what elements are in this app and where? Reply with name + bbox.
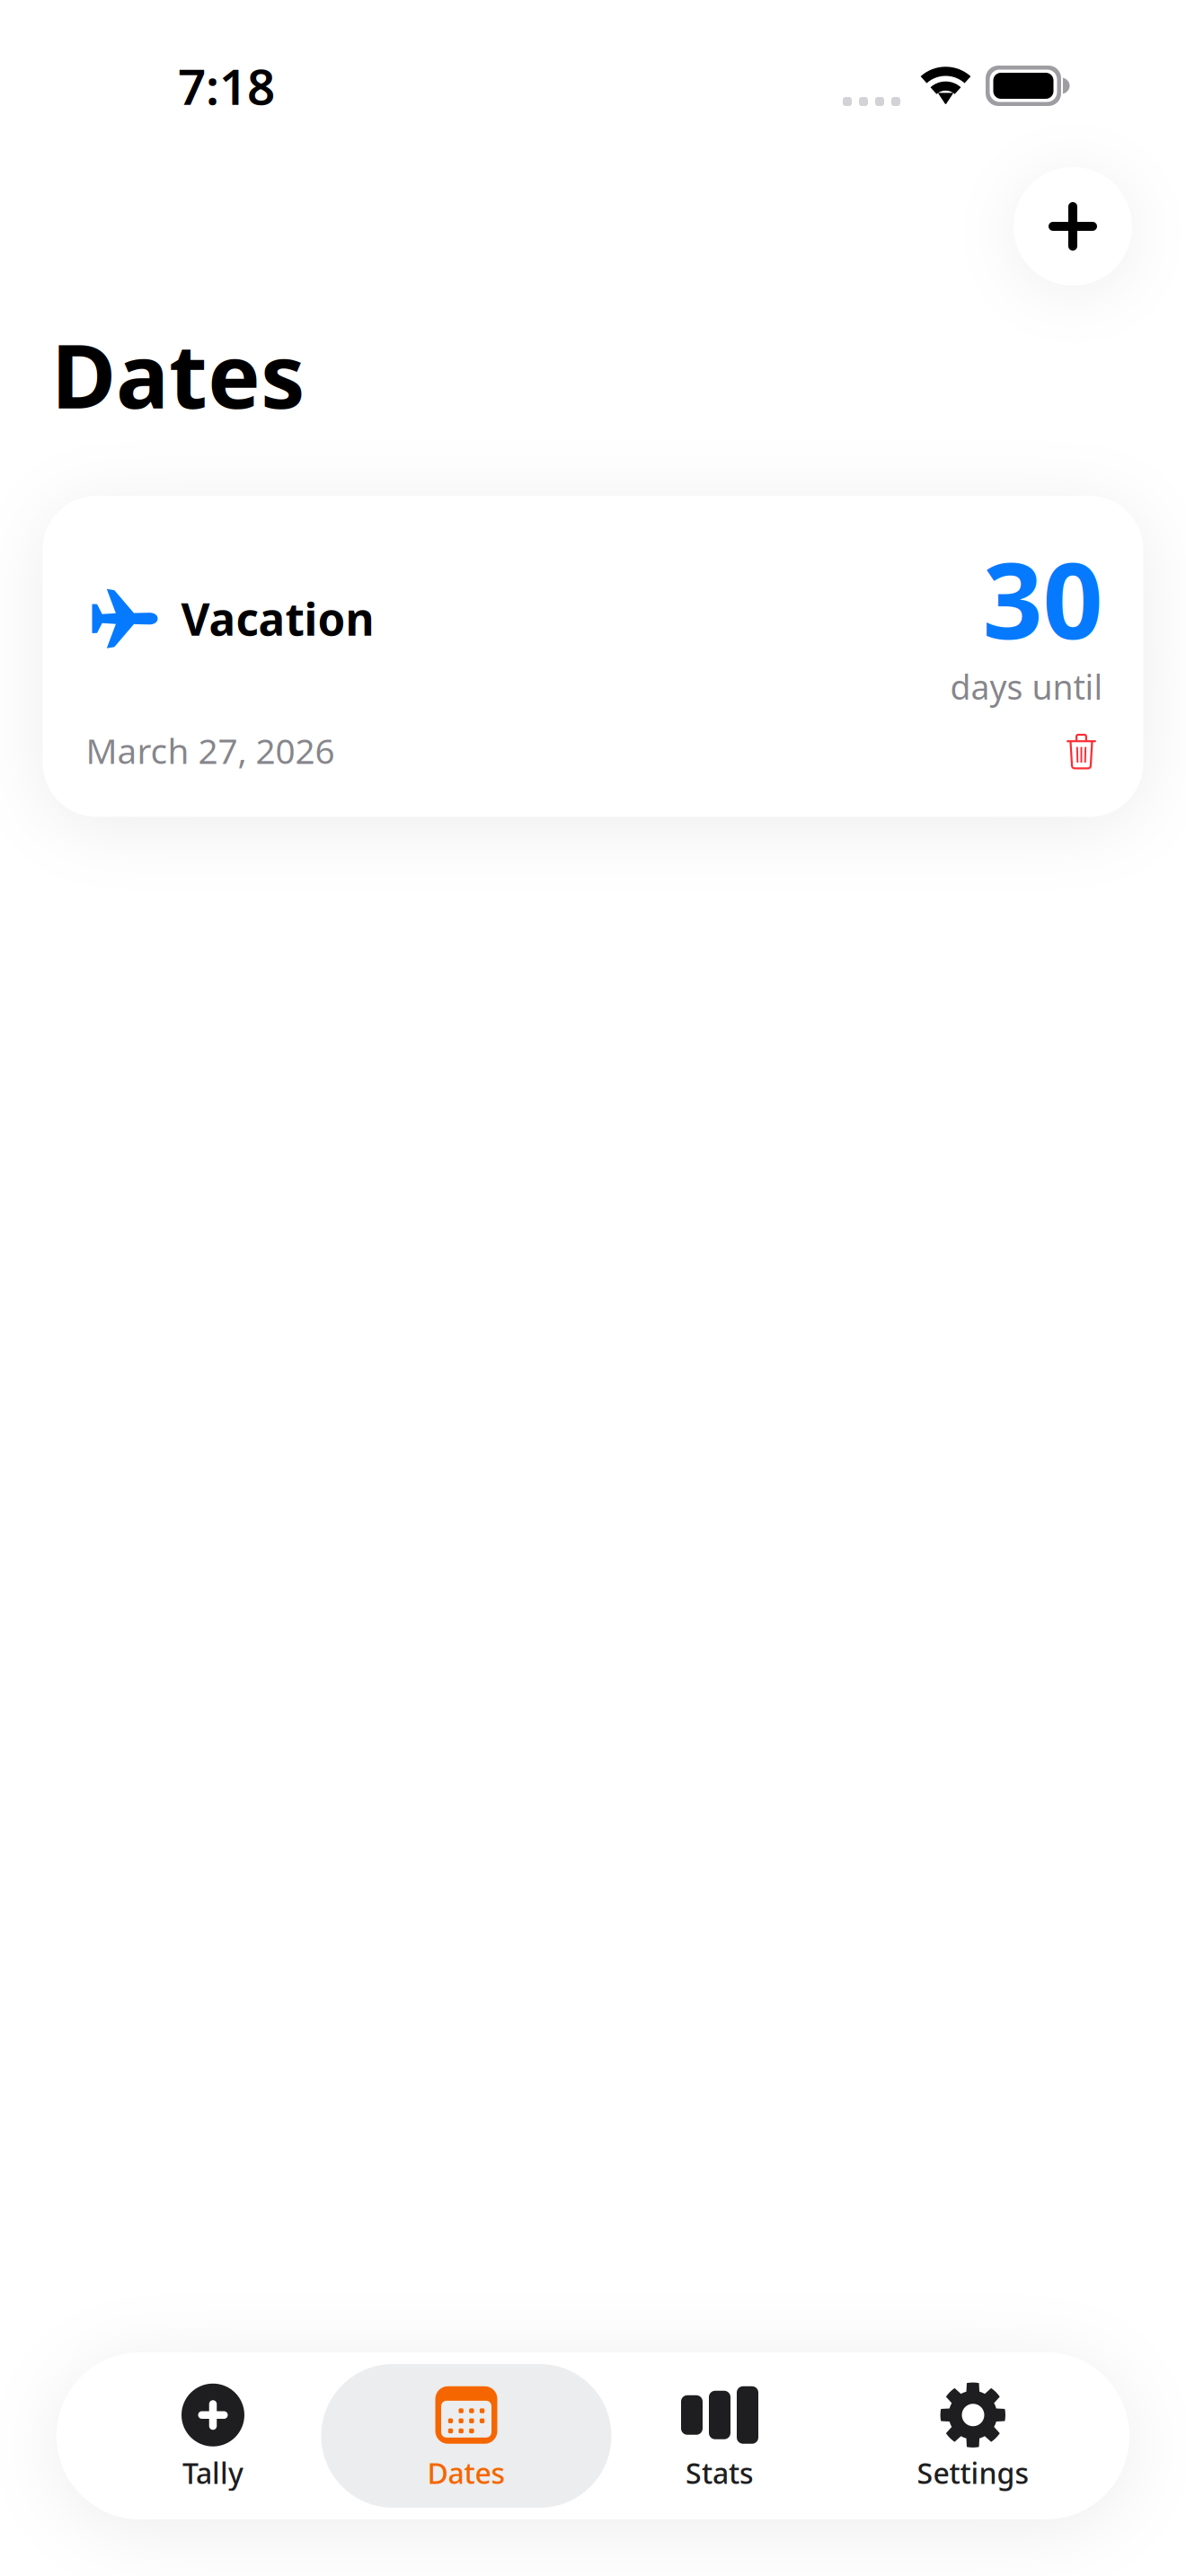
staticText: Dates <box>51 315 305 433</box>
staticText: days until <box>950 664 1103 709</box>
staticText: Vacation <box>181 589 374 648</box>
staticText: Settings <box>917 2454 1029 2492</box>
button[interactable]: Stats <box>593 2362 846 2510</box>
staticText: 7:18 <box>178 53 275 118</box>
staticText: 30 <box>982 528 1103 668</box>
staticText: March 27, 2026 <box>86 727 335 773</box>
button[interactable]: Add <box>1013 167 1132 286</box>
button[interactable]: Delete <box>1038 727 1103 786</box>
staticText: Stats <box>686 2454 754 2492</box>
button[interactable]: Dates <box>340 2362 593 2510</box>
staticText: Tally <box>182 2454 243 2492</box>
staticText: Dates <box>427 2454 505 2492</box>
button[interactable]: Tally <box>86 2362 340 2510</box>
button[interactable]: Settings <box>846 2362 1100 2510</box>
